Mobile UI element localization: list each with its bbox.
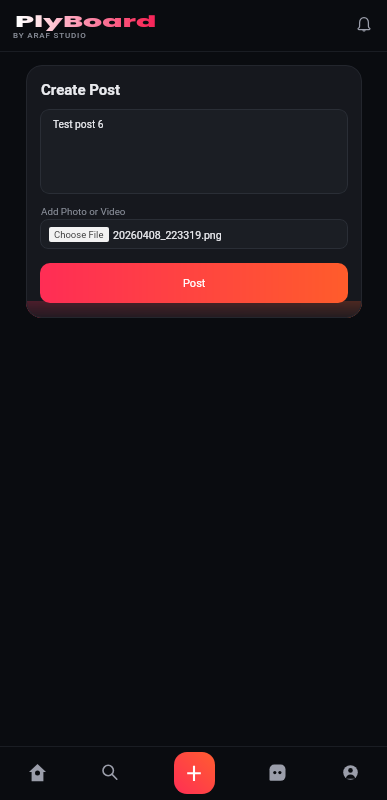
staticText: Create Post: [41, 81, 121, 99]
button[interactable]: Home: [15, 750, 59, 794]
staticText: BY ARAF STUDIO: [13, 31, 87, 40]
staticText: Add Photo or Video: [41, 206, 126, 217]
staticText: Test post 6: [53, 119, 104, 131]
button[interactable]: Create post: [174, 752, 215, 794]
staticText: 20260408_223319.png: [113, 229, 222, 241]
staticText: PlyBoard: [15, 11, 157, 32]
staticText: Post: [183, 277, 206, 290]
button[interactable]: Notifications: [345, 5, 383, 43]
button[interactable]: Messages: [255, 750, 299, 794]
button[interactable]: Choose File: [40, 219, 348, 249]
button[interactable]: Post: [40, 263, 348, 303]
button[interactable]: Search: [88, 750, 132, 794]
button[interactable]: Test post 6: [40, 109, 348, 194]
staticText: Choose File: [54, 229, 104, 240]
button[interactable]: Profile: [328, 750, 372, 794]
